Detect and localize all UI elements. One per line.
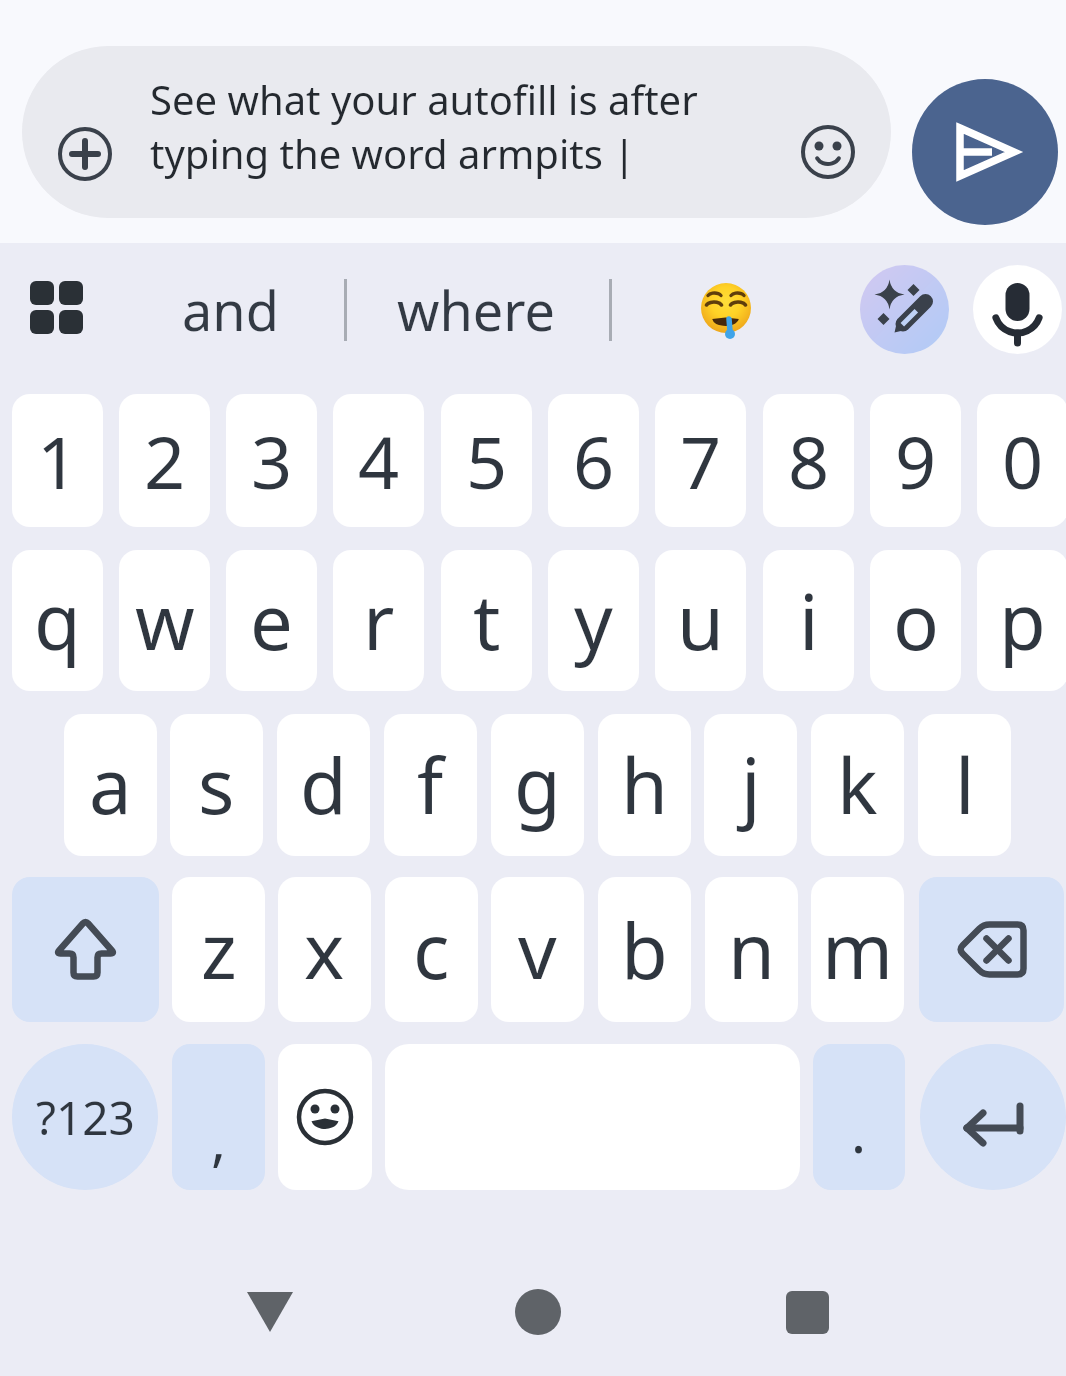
button[interactable]: and [130, 250, 330, 370]
staticText: x [304, 898, 345, 1002]
button[interactable]: i [763, 550, 854, 691]
button[interactable]: u [655, 550, 746, 691]
staticText: 2 [144, 412, 186, 510]
button[interactable] [920, 1044, 1066, 1190]
staticText: d [300, 733, 347, 837]
button[interactable] [860, 265, 949, 354]
staticText: s [198, 733, 235, 837]
button[interactable]: l [918, 714, 1011, 856]
button[interactable]: . [813, 1044, 905, 1190]
staticText: v [518, 898, 557, 1002]
staticText: m [822, 898, 894, 1002]
button[interactable] [767, 1274, 847, 1350]
button[interactable] [230, 1274, 310, 1350]
staticText: a [89, 733, 132, 837]
staticText: t [473, 569, 501, 673]
button[interactable]: d [277, 714, 370, 856]
staticText: w [135, 569, 195, 673]
button[interactable]: ?123 [12, 1044, 158, 1190]
button[interactable]: h [598, 714, 691, 856]
staticText: 4 [358, 412, 400, 510]
button[interactable] [973, 265, 1062, 354]
button[interactable]: where [376, 250, 576, 370]
staticText: 5 [466, 412, 508, 510]
button[interactable]: j [704, 714, 797, 856]
staticText: ?123 [36, 1086, 135, 1149]
button[interactable]: 3 [226, 394, 317, 527]
button[interactable]: w [119, 550, 210, 691]
button[interactable]: f [384, 714, 477, 856]
button[interactable]: 2 [119, 394, 210, 527]
button[interactable]: 7 [655, 394, 746, 527]
button[interactable] [22, 46, 891, 218]
staticText: r [363, 569, 395, 673]
button[interactable]: x [278, 877, 371, 1022]
button[interactable]: b [598, 877, 691, 1022]
button[interactable]: 9 [870, 394, 961, 527]
staticText: 1 [37, 412, 79, 510]
staticText: where [397, 273, 555, 347]
button[interactable]: , [172, 1044, 265, 1190]
staticText: and [182, 273, 279, 347]
button[interactable]: g [491, 714, 584, 856]
staticText: o [893, 569, 939, 673]
button[interactable]: v [491, 877, 584, 1022]
button[interactable]: 8 [763, 394, 854, 527]
staticText: q [34, 569, 81, 673]
staticText: h [621, 733, 668, 837]
button[interactable]: y [548, 550, 639, 691]
button[interactable]: 0 [977, 394, 1066, 527]
staticText: y [574, 569, 613, 673]
staticText: u [677, 569, 724, 673]
button[interactable]: s [170, 714, 263, 856]
button[interactable] [12, 877, 159, 1022]
button[interactable] [278, 1044, 372, 1190]
staticText: g [514, 733, 561, 837]
staticText: 7 [680, 412, 722, 510]
button[interactable]: r [333, 550, 424, 691]
button[interactable] [694, 276, 758, 340]
staticText: n [728, 898, 775, 1002]
staticText: , [211, 1101, 227, 1177]
staticText: k [837, 733, 878, 837]
staticText: 0 [1002, 412, 1044, 510]
button[interactable]: a [64, 714, 157, 856]
staticText: p [999, 569, 1046, 673]
button[interactable]: 5 [441, 394, 532, 527]
staticText: e [250, 569, 293, 673]
staticText: b [621, 898, 668, 1002]
button[interactable]: e [226, 550, 317, 691]
button[interactable]: k [811, 714, 904, 856]
staticText: i [799, 569, 819, 673]
button[interactable] [912, 79, 1058, 225]
button[interactable] [498, 1274, 578, 1350]
staticText: c [413, 898, 450, 1002]
button[interactable]: t [441, 550, 532, 691]
button[interactable]: z [172, 877, 265, 1022]
staticText: 3 [251, 412, 293, 510]
staticText: . [851, 1093, 867, 1169]
staticText: 6 [573, 412, 615, 510]
button[interactable] [30, 281, 84, 335]
button[interactable]: q [12, 550, 103, 691]
button[interactable]: n [705, 877, 798, 1022]
staticText: j [741, 733, 761, 837]
button[interactable]: m [811, 877, 904, 1022]
button[interactable]: c [385, 877, 478, 1022]
button[interactable] [919, 877, 1064, 1022]
staticText: z [201, 898, 237, 1002]
staticText: 8 [788, 412, 830, 510]
button[interactable]: o [870, 550, 961, 691]
staticText: 9 [895, 412, 937, 510]
button[interactable]: 6 [548, 394, 639, 527]
staticText: See what your autofill is after [150, 72, 698, 126]
button[interactable]: p [977, 550, 1066, 691]
button[interactable]: 4 [333, 394, 424, 527]
staticText: f [417, 733, 444, 837]
staticText: typing the word armpits | [150, 126, 636, 180]
staticText: l [955, 733, 975, 837]
button[interactable]: 1 [12, 394, 103, 527]
